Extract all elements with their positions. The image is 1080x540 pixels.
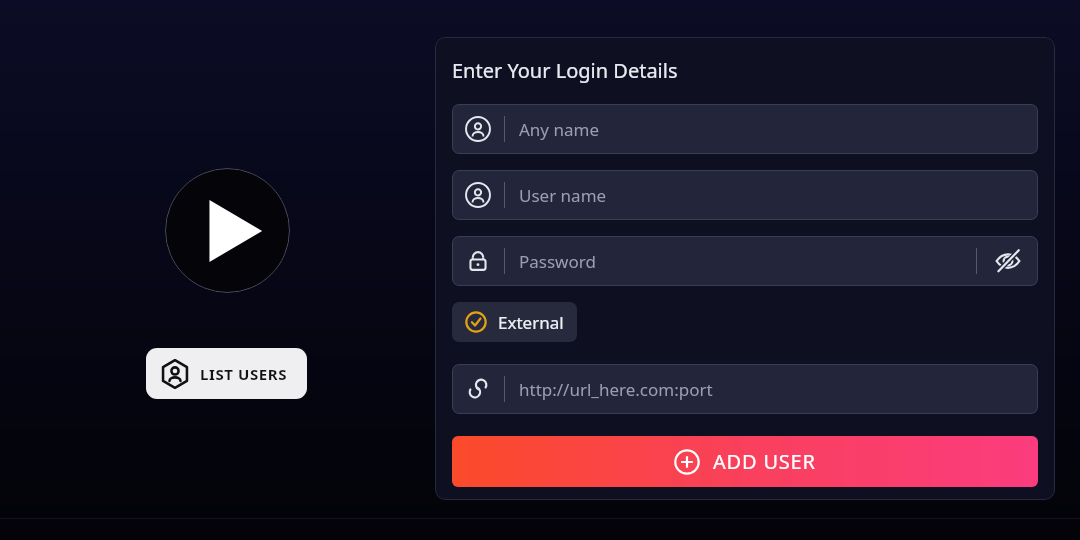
staticText: LIST USERS [200, 364, 288, 384]
button[interactable]: Any name [452, 104, 1038, 154]
staticText: Password [519, 250, 596, 273]
button[interactable]: Play [165, 168, 290, 293]
staticText: Any name [519, 118, 599, 141]
button[interactable]: http://url_here.com:port [452, 364, 1038, 414]
staticText: User name [519, 184, 607, 207]
button[interactable]: User name [452, 170, 1038, 220]
staticText: Enter Your Login Details [452, 57, 678, 84]
button[interactable]: Toggle password visibility [977, 236, 1038, 286]
staticText: http://url_here.com:port [519, 378, 713, 401]
button[interactable]: ADD USER [452, 436, 1038, 487]
staticText: ADD USER [713, 448, 816, 475]
button[interactable]: External [452, 302, 577, 342]
button[interactable]: LIST USERS [146, 348, 307, 399]
button[interactable]: Password [452, 236, 1038, 286]
staticText: External [498, 311, 564, 334]
